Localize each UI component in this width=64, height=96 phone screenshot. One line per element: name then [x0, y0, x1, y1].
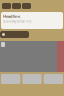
button[interactable]: Card [1, 74, 20, 84]
staticText: Headline [3, 13, 20, 19]
button[interactable]: Card [22, 74, 42, 84]
button[interactable]: Media thumbnail [12, 3, 21, 9]
button[interactable]: Media thumbnail [2, 3, 11, 9]
staticText: Secondary detail line [3, 20, 32, 23]
button[interactable]: Media thumbnail [22, 3, 31, 9]
button[interactable]: Headline [1, 12, 63, 29]
button[interactable]: Now playing [0, 31, 29, 38]
button[interactable]: Card [44, 74, 63, 84]
